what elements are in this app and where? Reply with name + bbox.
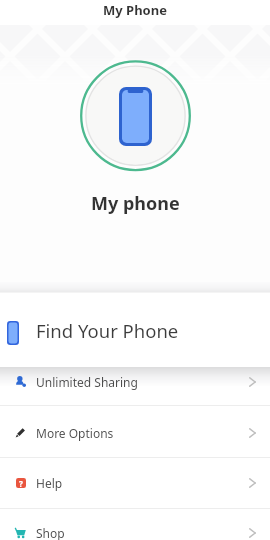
- button[interactable]: Shop: [0, 507, 270, 540]
- staticText: Find Your Phone: [36, 318, 179, 343]
- staticText: ?: [19, 478, 23, 488]
- button[interactable]: More Options: [0, 407, 270, 458]
- staticText: Unlimited Sharing: [36, 374, 138, 390]
- staticText: My Phone: [103, 1, 167, 19]
- staticText: My phone: [91, 191, 180, 216]
- staticText: Help: [36, 475, 63, 491]
- staticText: More Options: [36, 425, 114, 441]
- button[interactable]: ?: [0, 457, 270, 508]
- button[interactable]: Unlimited Sharing: [0, 356, 270, 407]
- staticText: Shop: [36, 525, 65, 540]
- button[interactable]: Find Your Phone: [0, 293, 270, 368]
